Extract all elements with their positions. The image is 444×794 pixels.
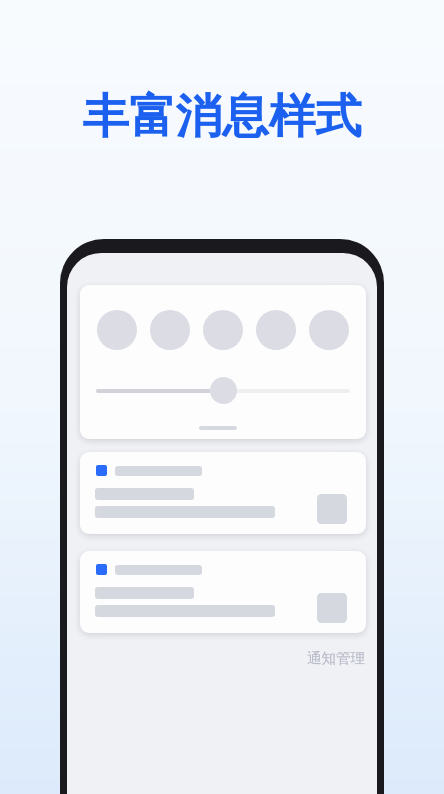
button[interactable]: Brightness slider (80, 285, 366, 439)
staticText: 丰富消息样式 (0, 87, 444, 146)
other: Brightness slider (210, 377, 237, 404)
button[interactable] (80, 452, 366, 534)
staticText: 通知管理 (307, 649, 365, 667)
button[interactable] (80, 551, 366, 633)
button[interactable]: 通知管理 (301, 644, 371, 672)
